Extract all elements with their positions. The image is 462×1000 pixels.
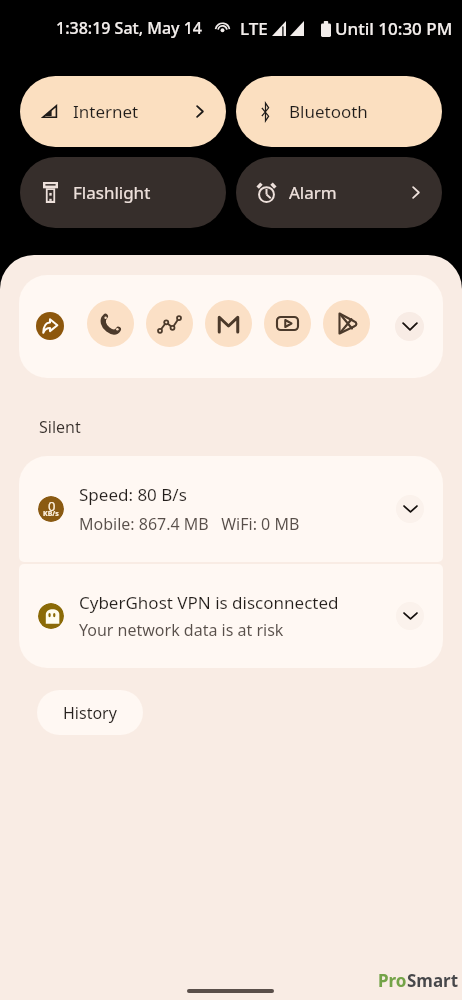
staticText: Smart bbox=[407, 969, 459, 992]
staticText: Internet bbox=[73, 100, 139, 123]
staticText: 0 bbox=[48, 497, 56, 515]
button[interactable]: 0 bbox=[19, 456, 443, 562]
staticText: Pro bbox=[378, 969, 407, 992]
button[interactable]: Alarm bbox=[236, 157, 442, 228]
staticText: Mobile: 867.4 MB WiFi: 0 MB bbox=[79, 513, 300, 535]
staticText: Speed: 80 B/s bbox=[79, 483, 187, 506]
staticText: Bluetooth bbox=[289, 100, 368, 123]
button[interactable]: CyberGhost VPN is disconnected bbox=[19, 564, 443, 668]
button[interactable]: YouTube bbox=[264, 300, 311, 347]
button[interactable]: Expand notifications bbox=[395, 312, 424, 341]
button[interactable]: Gmail bbox=[205, 300, 252, 347]
button[interactable]: Phone bbox=[87, 300, 134, 347]
button[interactable]: Expand bbox=[396, 495, 424, 523]
button[interactable]: Internet bbox=[20, 76, 226, 147]
staticText: Until 10:30 PM bbox=[335, 17, 453, 40]
staticText: History bbox=[63, 702, 117, 724]
staticText: CyberGhost VPN is disconnected bbox=[79, 591, 339, 614]
staticText: Flashlight bbox=[73, 181, 151, 204]
button[interactable]: Stats bbox=[146, 300, 193, 347]
button[interactable]: Play Store bbox=[323, 300, 370, 347]
button[interactable]: Bluetooth bbox=[236, 76, 442, 147]
staticText: KB/s bbox=[43, 509, 59, 519]
staticText: Silent bbox=[39, 416, 81, 438]
staticText: LTE bbox=[240, 17, 268, 40]
button[interactable]: Share bbox=[36, 312, 64, 340]
button[interactable]: Flashlight bbox=[20, 157, 226, 228]
staticText: 1:38:19 Sat, May 14 bbox=[56, 17, 202, 39]
staticText: Alarm bbox=[289, 181, 337, 204]
button[interactable]: Expand bbox=[396, 602, 424, 630]
button[interactable]: History bbox=[37, 690, 143, 735]
staticText: Your network data is at risk bbox=[79, 619, 284, 641]
